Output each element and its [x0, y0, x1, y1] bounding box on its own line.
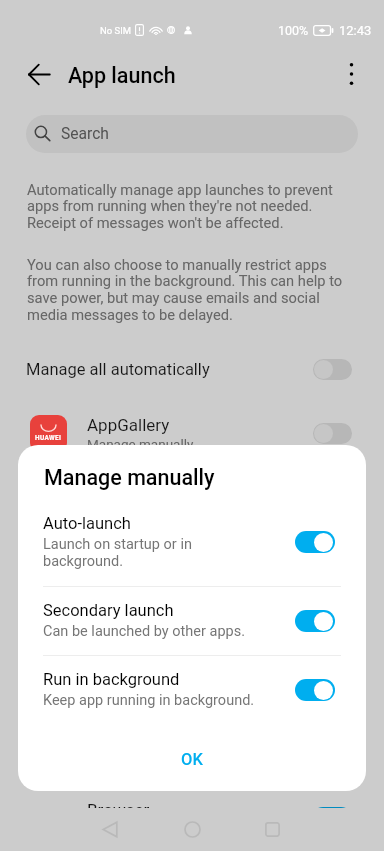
button[interactable]: Browser: [0, 786, 384, 850]
button[interactable]: OK: [18, 727, 366, 791]
button[interactable]: More options: [329, 52, 373, 96]
staticText: Manage manually: [44, 465, 215, 490]
button[interactable]: Toggle: [295, 610, 335, 632]
button[interactable]: Toggle: [313, 359, 352, 380]
staticText: You can also choose to manually restrict…: [27, 256, 343, 324]
staticText: Secondary launch: [43, 601, 174, 620]
staticText: AppGallery: [87, 415, 170, 435]
staticText: Auto-launch: [43, 514, 131, 533]
button[interactable]: Toggle: [312, 807, 352, 829]
staticText: Automatically manage app launches to pre…: [27, 181, 343, 232]
button[interactable]: Secondary launch: [18, 586, 366, 655]
staticText: Can be launched by other apps.: [43, 623, 246, 640]
staticText: No SIM: [100, 25, 132, 36]
button[interactable]: Home: [168, 808, 216, 851]
staticText: Manage manually: [87, 436, 194, 452]
staticText: Run in background: [43, 670, 180, 689]
button[interactable]: AppGallery: [0, 401, 384, 465]
staticText: Search: [61, 125, 109, 143]
staticText: 12:43: [339, 23, 372, 38]
staticText: 100%: [278, 23, 309, 38]
staticText: Browser: [87, 800, 150, 820]
staticText: Launch on startup or in background.: [43, 536, 192, 570]
button[interactable]: Toggle: [295, 679, 335, 701]
button[interactable]: Recents: [248, 808, 296, 851]
button[interactable]: Toggle: [295, 531, 335, 553]
button[interactable]: Run in background: [18, 655, 366, 724]
staticText: Keep app running in background.: [43, 692, 255, 709]
staticText: OK: [181, 750, 203, 769]
staticText: App launch: [68, 63, 176, 88]
button[interactable]: Search: [26, 115, 358, 153]
button[interactable]: Auto-launch: [18, 498, 366, 586]
staticText: Manage manually: [87, 821, 194, 837]
button[interactable]: Manage all automatically: [0, 347, 384, 391]
button[interactable]: Toggle: [313, 423, 352, 444]
staticText: HUAWEI: [35, 434, 62, 442]
staticText: Manage all automatically: [26, 360, 210, 379]
button[interactable]: Back: [86, 808, 134, 851]
button[interactable]: Back: [17, 52, 61, 96]
